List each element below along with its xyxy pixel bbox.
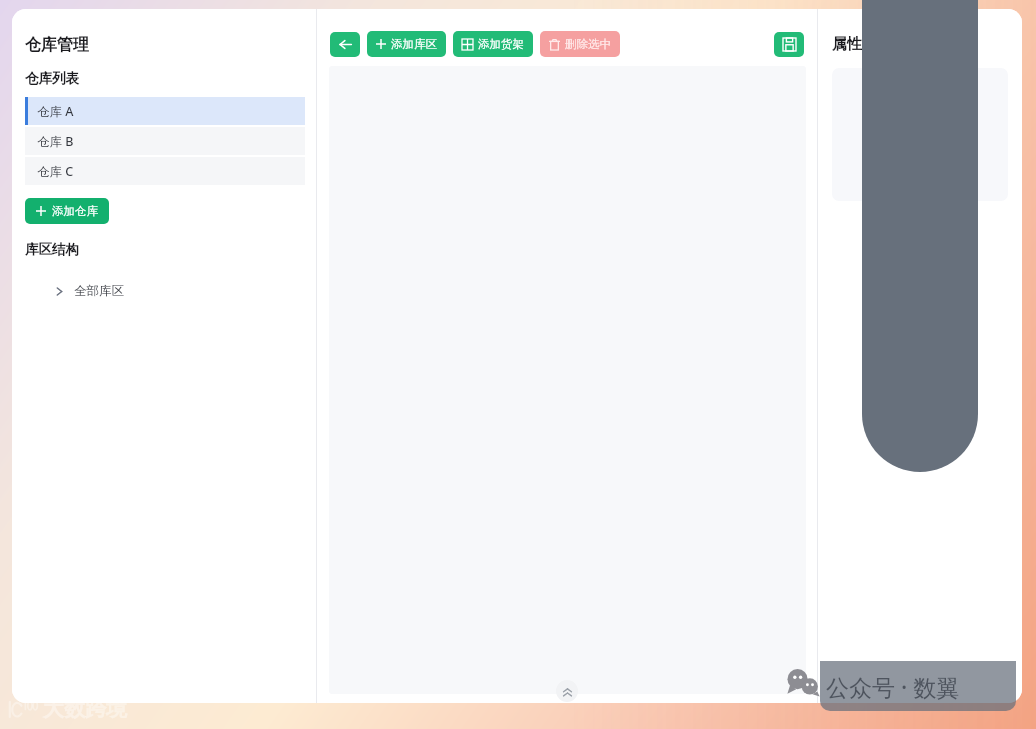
button[interactable]: 仓库 B — [25, 127, 305, 155]
staticText: 属性编辑 — [832, 35, 892, 54]
staticText: 仓库 C — [37, 163, 74, 180]
staticText: 库区结构 — [25, 241, 79, 258]
button[interactable]: 添加库区 — [367, 31, 446, 57]
button[interactable]: 保存 — [774, 32, 804, 57]
staticText: 添加仓库 — [52, 204, 98, 218]
button[interactable]: 全部库区 — [25, 280, 305, 302]
staticText: 公众号 · 数翼 — [826, 671, 960, 702]
staticText: 仓库 A — [37, 103, 74, 120]
button[interactable]: 删除选中 — [540, 31, 620, 57]
button[interactable]: 展开面板 — [556, 680, 578, 702]
staticText: 仓库 B — [37, 133, 74, 150]
staticText: 大数跨境 — [43, 696, 127, 722]
staticText: 添加库区 — [391, 37, 437, 51]
button[interactable]: 仓库 A — [25, 97, 305, 125]
staticText: 删除选中 — [565, 37, 611, 51]
button[interactable]: 返回 — [330, 32, 360, 57]
button[interactable]: 添加仓库 — [25, 198, 109, 224]
staticText: 仓库列表 — [25, 70, 79, 87]
button[interactable]: 添加货架 — [453, 31, 533, 57]
staticText: 添加货架 — [478, 37, 524, 51]
button[interactable]: 仓库 C — [25, 157, 305, 185]
staticText: 仓库管理 — [25, 35, 89, 55]
staticText: 全部库区 — [74, 283, 124, 299]
